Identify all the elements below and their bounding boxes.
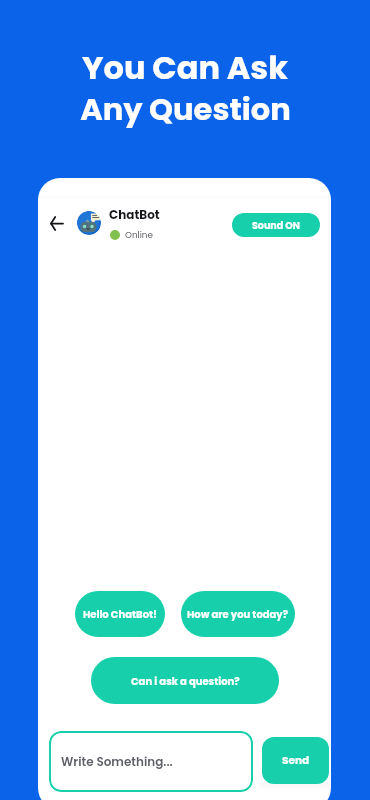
staticText: How are you today? bbox=[187, 607, 289, 621]
staticText: You Can Ask bbox=[82, 45, 288, 90]
staticText: Send bbox=[282, 753, 310, 768]
staticText: Any Question bbox=[80, 88, 291, 131]
staticText: ChatBot bbox=[109, 206, 160, 223]
button[interactable]: Sound ON bbox=[232, 213, 320, 237]
staticText: Can i ask a question? bbox=[131, 674, 240, 688]
button[interactable]: Hello ChatBot! bbox=[75, 591, 165, 637]
staticText: Write Something... bbox=[61, 753, 173, 770]
staticText: Online bbox=[125, 229, 153, 241]
button[interactable]: Write Something... bbox=[49, 731, 253, 792]
staticText: Hello ChatBot! bbox=[83, 607, 158, 621]
staticText: Sound ON bbox=[252, 219, 300, 232]
button[interactable]: Can i ask a question? bbox=[91, 657, 279, 704]
button[interactable]: Back bbox=[44, 211, 69, 236]
button[interactable]: Send bbox=[262, 737, 329, 784]
button[interactable]: How are you today? bbox=[181, 591, 295, 637]
